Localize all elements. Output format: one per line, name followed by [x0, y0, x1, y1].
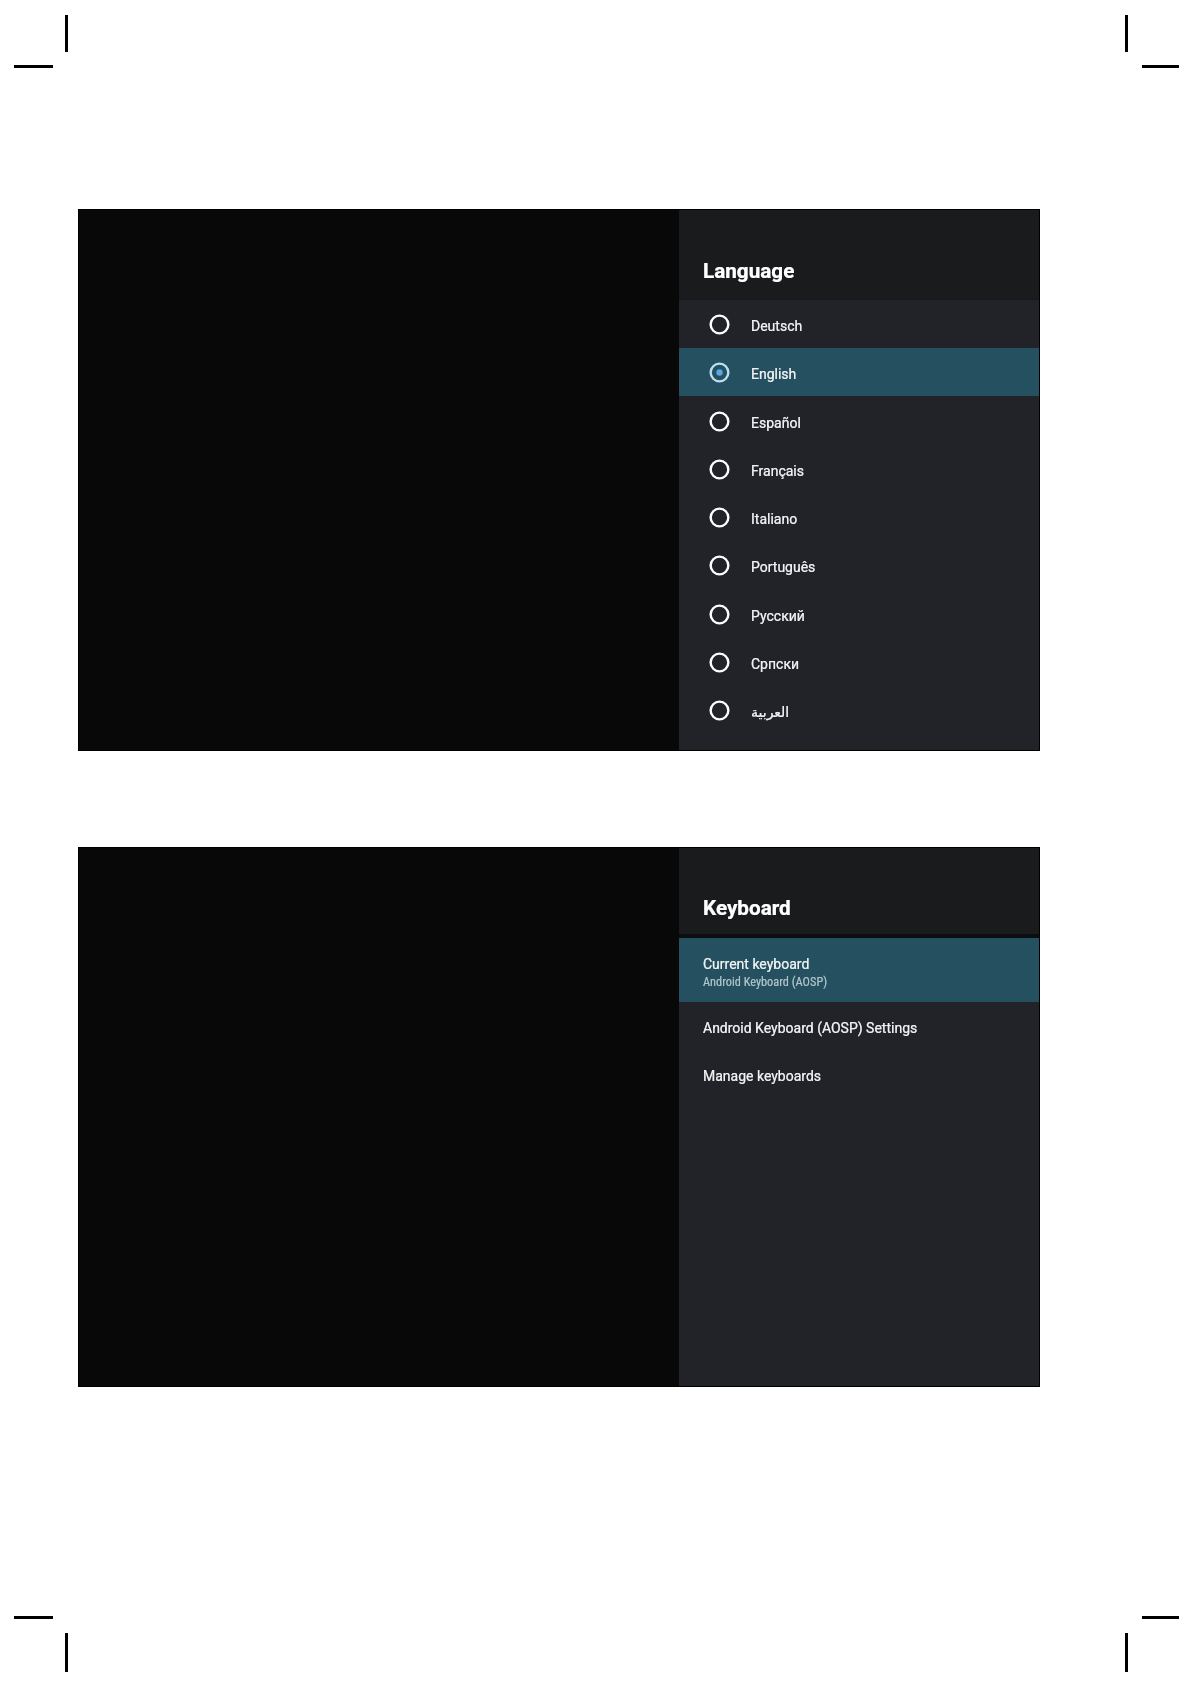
button[interactable]: Русский [679, 590, 1039, 638]
button[interactable]: Italiano [679, 493, 1039, 541]
button[interactable]: English [679, 348, 1039, 396]
button[interactable]: Deutsch [679, 300, 1039, 348]
staticText: Android Keyboard (AOSP) [703, 975, 828, 989]
staticText: Keyboard [703, 896, 791, 920]
staticText: Português [751, 559, 816, 575]
button[interactable]: Current keyboard [679, 938, 1039, 1002]
button[interactable]: Português [679, 541, 1039, 589]
staticText: Current keyboard [703, 956, 810, 972]
staticText: العربية [751, 704, 790, 720]
button[interactable]: Српски [679, 638, 1039, 686]
staticText: Android Keyboard (AOSP) Settings [703, 1020, 918, 1036]
staticText: Español [751, 415, 801, 431]
button[interactable]: Español [679, 397, 1039, 445]
staticText: Language [703, 259, 795, 283]
staticText: Deutsch [751, 318, 803, 334]
staticText: Manage keyboards [703, 1068, 822, 1084]
staticText: English [751, 366, 797, 382]
button[interactable]: Manage keyboards [679, 1050, 1039, 1098]
staticText: Русский [751, 608, 805, 624]
staticText: Српски [751, 656, 800, 672]
button[interactable]: Français [679, 445, 1039, 493]
button[interactable]: Android Keyboard (AOSP) Settings [679, 1002, 1039, 1050]
staticText: Français [751, 463, 804, 479]
button[interactable]: العربية [679, 686, 1039, 734]
staticText: Italiano [751, 511, 798, 527]
